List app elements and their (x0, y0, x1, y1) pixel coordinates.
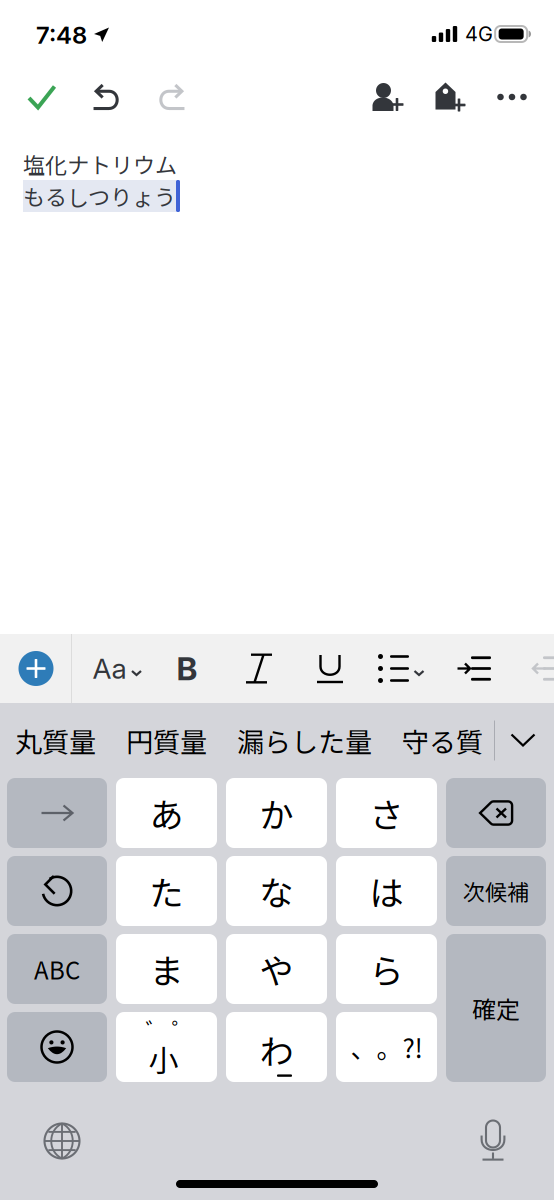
button[interactable]: ABC (7, 934, 107, 1004)
button[interactable]: Move cursor right (7, 778, 107, 848)
staticText: さ (369, 788, 403, 838)
button[interactable]: Insert (5, 634, 67, 703)
staticText: 円質量 (126, 721, 207, 760)
staticText: 4G (465, 22, 493, 46)
staticText: あ (149, 788, 183, 838)
staticText: 次候補 (463, 875, 529, 907)
button[interactable]: Italic (227, 634, 291, 703)
button[interactable]: ま (116, 934, 217, 1004)
staticText: ゜ (171, 1013, 193, 1045)
button[interactable]: Increase indent (442, 634, 506, 703)
button[interactable]: や (226, 934, 327, 1004)
staticText: B (176, 649, 197, 688)
staticText: わ (259, 1025, 293, 1074)
button[interactable]: 守る質 (387, 703, 498, 778)
button[interactable]: Small kana, dakuten (116, 1012, 217, 1082)
button[interactable]: Undo (7, 856, 107, 926)
staticText: た (149, 866, 183, 916)
button[interactable]: あ (116, 778, 217, 848)
staticText: ゛ (145, 1013, 167, 1045)
button[interactable]: 漏らした量 (222, 703, 387, 778)
button[interactable]: Text format (83, 634, 151, 703)
button[interactable]: Dictation (465, 1113, 521, 1169)
staticText: 守る質 (402, 721, 483, 760)
button[interactable]: Add signature (419, 69, 482, 125)
button[interactable]: 丸質量 (0, 703, 111, 778)
button[interactable]: ら (336, 934, 437, 1004)
button[interactable]: な (226, 856, 327, 926)
staticText: な (259, 866, 293, 916)
staticText: は (369, 866, 403, 916)
button[interactable]: Redo (139, 69, 204, 125)
button[interactable]: 次候補 (446, 856, 546, 926)
staticText: か (259, 788, 293, 838)
button[interactable]: Next keyboard (34, 1113, 90, 1169)
staticText: 、。?! (350, 1028, 422, 1066)
staticText: ABC (34, 952, 80, 986)
button[interactable]: さ (336, 778, 437, 848)
button[interactable]: More options (482, 69, 542, 125)
button[interactable]: wa row (226, 1012, 327, 1082)
staticText: 確定 (472, 991, 520, 1025)
button[interactable]: Decrease indent (514, 634, 554, 703)
staticText: 小 (148, 1037, 178, 1081)
button[interactable]: 円質量 (111, 703, 222, 778)
button[interactable]: 確定 (446, 934, 546, 1082)
staticText: 漏らした量 (237, 721, 372, 760)
staticText: Aa (92, 652, 126, 685)
staticText: 丸質量 (15, 721, 96, 760)
staticText: 7:48 (36, 20, 87, 49)
button[interactable]: Emoji (7, 1012, 107, 1082)
button[interactable]: Delete (446, 778, 546, 848)
button[interactable]: Add person (356, 69, 419, 125)
button[interactable]: Bulleted list (376, 634, 426, 703)
staticText: ら (369, 944, 403, 994)
button[interactable]: Underline (298, 634, 362, 703)
staticText: 塩化ナトリウム (23, 148, 177, 180)
staticText: ま (149, 944, 183, 994)
button[interactable]: Done (10, 69, 74, 125)
button[interactable]: Show more candidates (497, 703, 549, 778)
button[interactable]: Bold (155, 634, 219, 703)
button[interactable]: か (226, 778, 327, 848)
button[interactable]: た (116, 856, 217, 926)
staticText: もるしつりょう (23, 180, 176, 212)
button[interactable]: Undo (74, 69, 139, 125)
button[interactable]: 、。?! (336, 1012, 437, 1082)
button[interactable]: は (336, 856, 437, 926)
staticText: や (259, 944, 293, 994)
